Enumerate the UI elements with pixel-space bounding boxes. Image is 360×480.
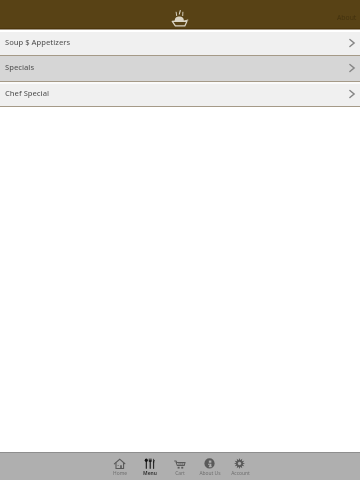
button[interactable]: Cart — [164, 453, 194, 480]
other: Restaurant — [172, 10, 188, 27]
staticText: Home — [113, 470, 127, 477]
staticText: Soup $ Appetizers — [5, 37, 350, 47]
staticText: Account — [231, 470, 250, 477]
staticText: Menu — [143, 470, 157, 477]
staticText: Cart — [175, 470, 185, 477]
staticText: Chef Special — [5, 88, 350, 98]
button[interactable]: Soup $ Appetizers — [0, 32, 360, 55]
button[interactable]: Chef Special — [0, 84, 360, 106]
button[interactable]: About — [327, 0, 360, 24]
staticText: Specials — [5, 62, 350, 72]
button[interactable]: Home — [104, 453, 134, 480]
button[interactable]: Account — [224, 453, 254, 480]
staticText: About — [337, 13, 357, 22]
staticText: About Us — [199, 470, 221, 477]
button[interactable]: Specials — [0, 56, 360, 81]
button[interactable]: Menu — [134, 453, 164, 480]
button[interactable]: About Us — [194, 453, 224, 480]
